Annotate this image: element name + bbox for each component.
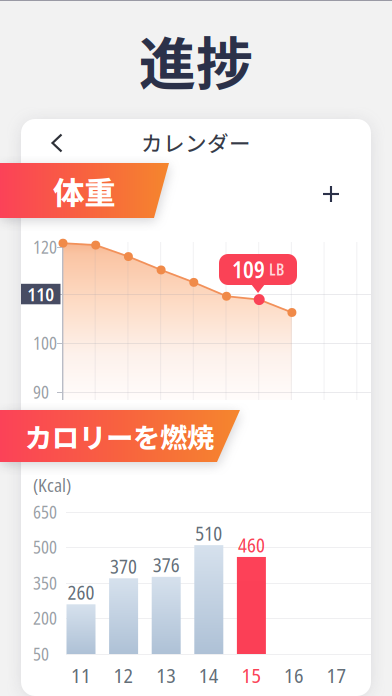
staticText: 500	[33, 535, 57, 559]
staticText: 11	[71, 661, 91, 689]
staticText: 進捗	[139, 18, 253, 101]
staticText: 13	[156, 661, 176, 689]
staticText: 460	[238, 532, 265, 558]
staticText: 370	[110, 553, 137, 579]
staticText: (Kcal)	[33, 473, 71, 497]
staticText: 510	[195, 520, 222, 546]
staticText: カロリーを燃焼	[25, 416, 214, 456]
staticText: 90	[33, 380, 49, 404]
staticText: 376	[153, 552, 180, 578]
staticText: 650	[33, 500, 57, 524]
staticText: 109	[232, 254, 265, 285]
staticText: カレンダー	[141, 126, 251, 158]
staticText: 200	[33, 606, 57, 630]
staticText: 16	[284, 661, 304, 689]
staticText: 12	[114, 661, 134, 689]
staticText: LB	[269, 259, 284, 280]
staticText: 17	[327, 661, 347, 689]
staticText: 260	[67, 579, 94, 605]
staticText: 15	[241, 661, 261, 689]
staticText: 350	[33, 571, 57, 595]
button[interactable]: Add	[309, 172, 353, 216]
staticText: 100	[33, 331, 57, 355]
staticText: 110	[27, 281, 54, 307]
staticText: 体重	[53, 168, 115, 213]
button[interactable]: Back	[35, 121, 79, 165]
staticText: 120	[33, 235, 57, 259]
staticText: 14	[199, 661, 219, 689]
staticText: 50	[33, 642, 49, 666]
